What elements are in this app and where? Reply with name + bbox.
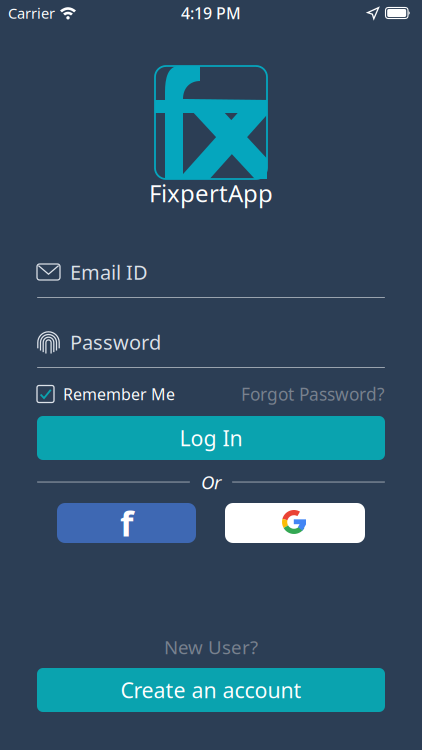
staticText: f: [120, 500, 133, 546]
staticText: Or: [201, 470, 221, 494]
staticText: 4:19 PM: [181, 2, 241, 24]
staticText: Remember Me: [63, 383, 175, 405]
button[interactable]: Sign in with Facebook: [57, 503, 196, 543]
staticText: New User?: [164, 635, 258, 659]
staticText: Log In: [179, 424, 242, 452]
staticText: Email ID: [70, 259, 148, 285]
staticText: Carrier: [8, 3, 55, 23]
staticText: FixpertApp: [149, 177, 273, 209]
button[interactable]: Remember Me: [37, 383, 175, 405]
staticText: Forgot Password?: [241, 382, 385, 405]
staticText: Create an account: [120, 676, 301, 704]
button[interactable]: Sign in with Google: [225, 503, 365, 543]
button[interactable]: Log In: [37, 416, 385, 460]
button[interactable]: Create an account: [37, 668, 385, 712]
staticText: Password: [70, 329, 161, 355]
button[interactable]: Forgot Password?: [241, 383, 385, 405]
